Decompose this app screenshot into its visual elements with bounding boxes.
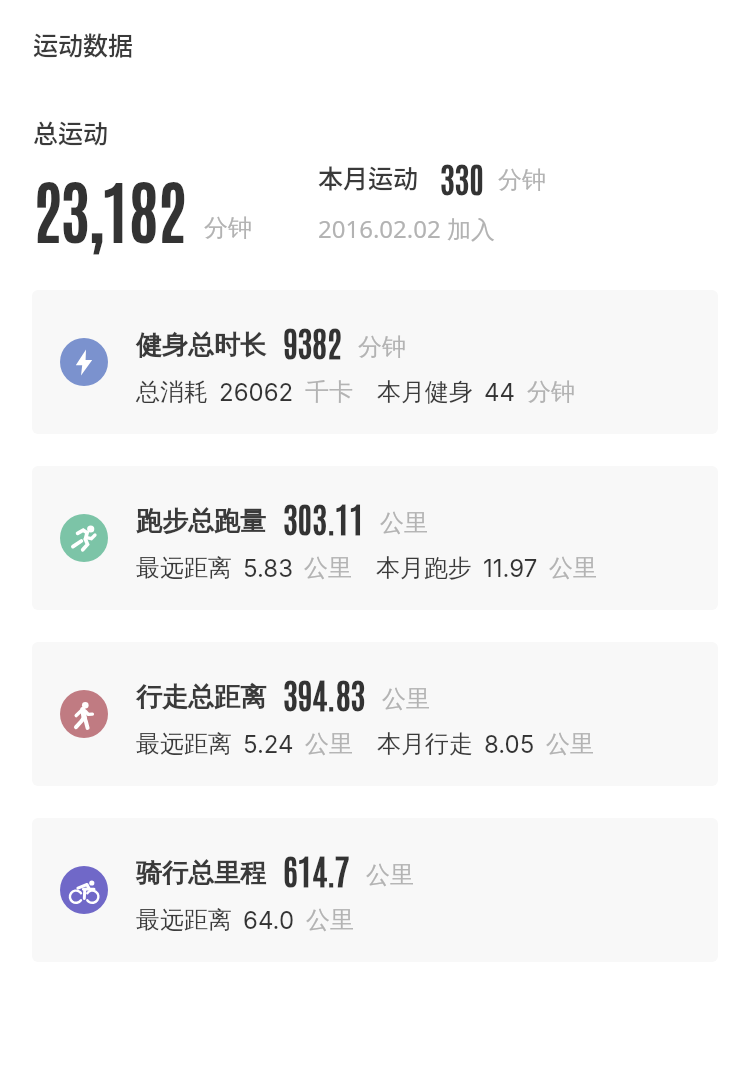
staticText: 330: [440, 155, 484, 200]
staticText: 11.97: [483, 554, 538, 583]
staticText: 最远距离: [136, 729, 232, 759]
staticText: 分钟: [204, 213, 252, 243]
staticText: 5.83: [243, 554, 293, 583]
staticText: 总消耗: [136, 377, 208, 407]
staticText: 26062: [219, 378, 294, 407]
button[interactable]: 行走总距离: [32, 642, 718, 786]
staticText: 9382: [283, 319, 342, 364]
staticText: 公里: [304, 553, 352, 583]
staticText: 分钟: [527, 377, 575, 407]
staticText: 5.24: [243, 730, 294, 759]
staticText: 运动数据: [33, 26, 134, 62]
staticText: 本月健身: [377, 377, 473, 407]
staticText: 本月跑步: [376, 553, 472, 583]
staticText: 64.0: [243, 906, 295, 935]
staticText: 公里: [549, 553, 597, 583]
staticText: 分钟: [358, 332, 406, 362]
staticText: 公里: [546, 729, 594, 759]
staticText: 公里: [366, 860, 414, 890]
staticText: 44: [484, 378, 516, 407]
staticText: 总运动: [33, 114, 109, 150]
staticText: 最远距离: [136, 905, 232, 935]
button[interactable]: 跑步总跑量: [32, 466, 718, 610]
staticText: 303.11: [283, 495, 364, 540]
staticText: 健身总时长: [136, 329, 266, 362]
staticText: 公里: [306, 905, 354, 935]
staticText: 分钟: [498, 165, 546, 195]
staticText: 千卡: [305, 377, 353, 407]
staticText: 本月运动: [318, 159, 419, 195]
button[interactable]: 健身总时长: [32, 290, 718, 434]
staticText: 23,182: [33, 165, 186, 252]
staticText: 跑步总跑量: [136, 505, 266, 538]
staticText: 公里: [380, 508, 428, 538]
staticText: 394.83: [283, 671, 366, 716]
staticText: 2016.02.02 加入: [318, 212, 495, 245]
staticText: 行走总距离: [136, 681, 266, 714]
staticText: 公里: [305, 729, 353, 759]
staticText: 骑行总里程: [136, 857, 266, 890]
staticText: 最远距离: [136, 553, 232, 583]
staticText: 本月行走: [377, 729, 473, 759]
staticText: 公里: [382, 684, 430, 714]
staticText: 614.7: [283, 847, 350, 892]
staticText: 8.05: [484, 730, 535, 759]
button[interactable]: 骑行总里程: [32, 818, 718, 962]
